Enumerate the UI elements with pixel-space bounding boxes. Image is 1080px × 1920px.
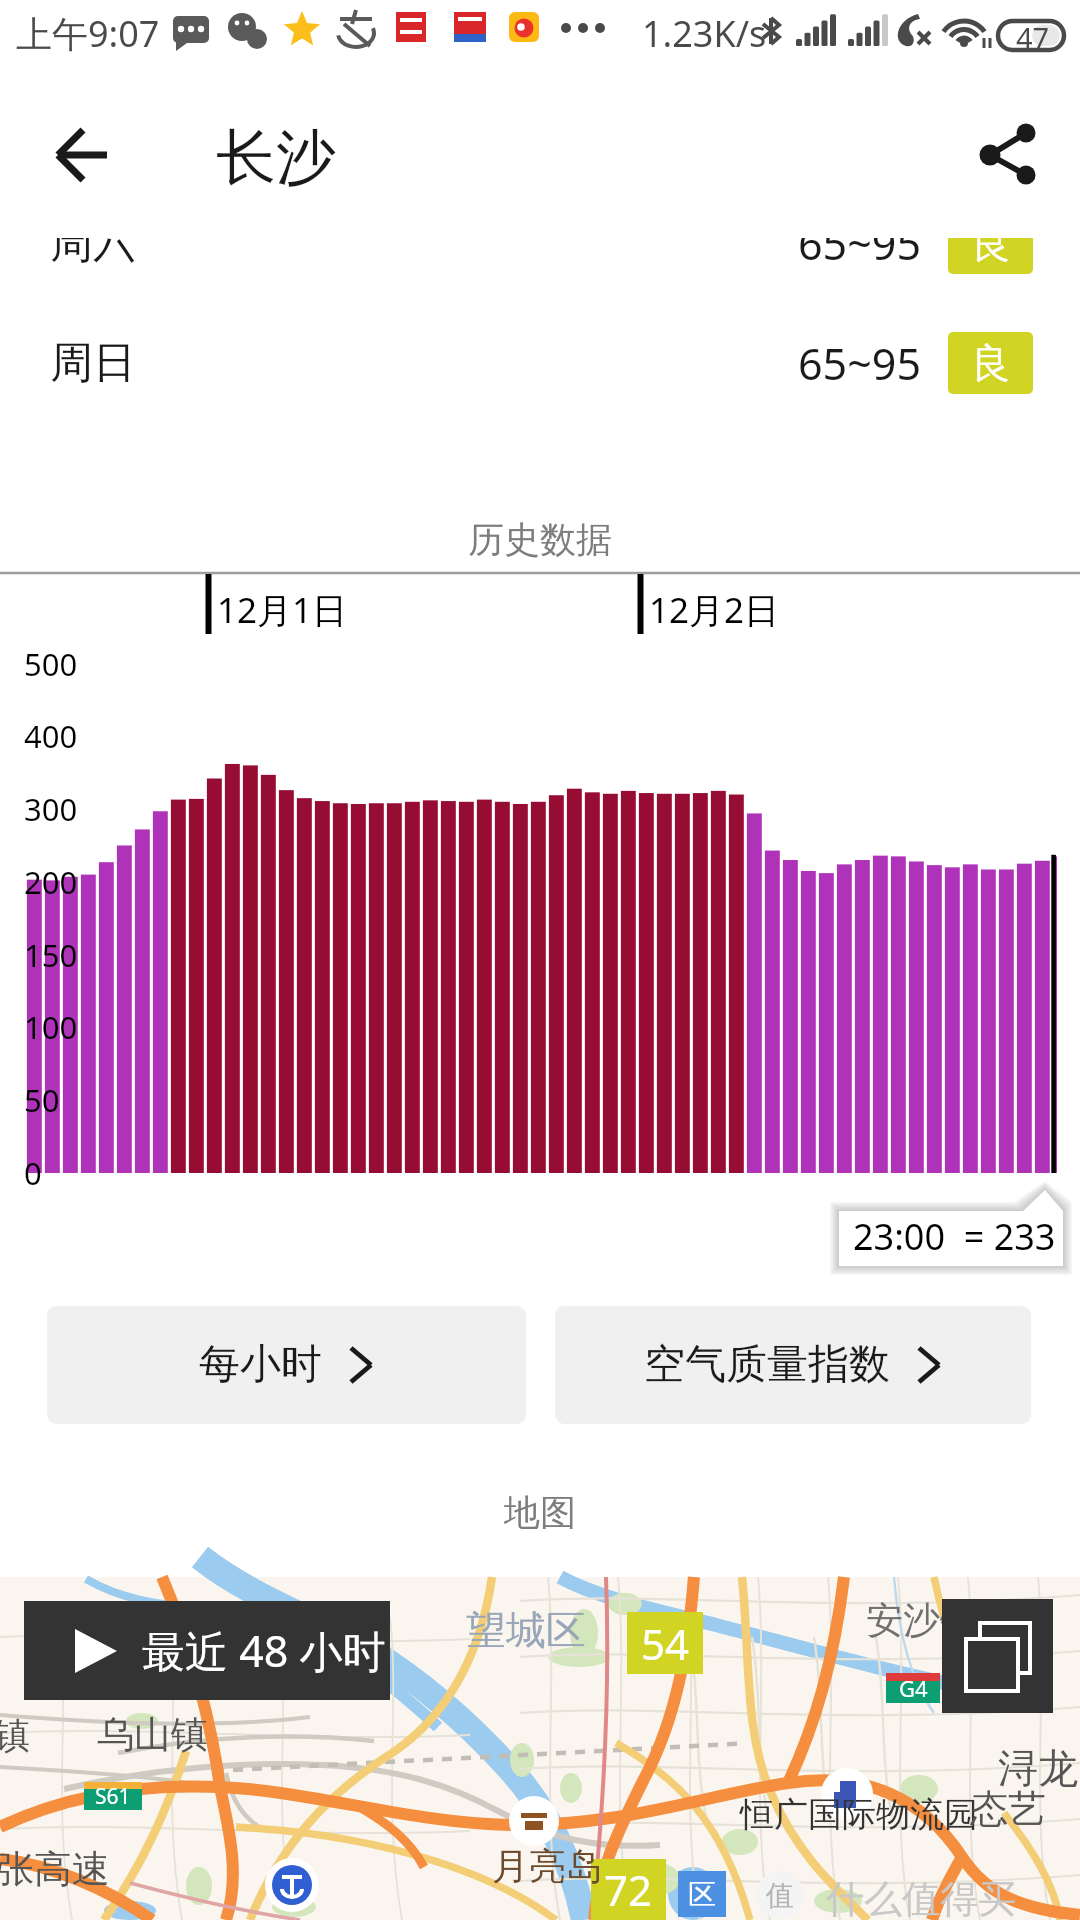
staticText: 65~95 (798, 334, 921, 393)
staticText: S61 (95, 1782, 131, 1810)
staticText: G4 (899, 1673, 928, 1703)
staticText: 长沙 (216, 120, 336, 196)
staticText: 54 (641, 1615, 690, 1672)
staticText: 23:00 = 233 (853, 1212, 1056, 1261)
staticText: 安沙镇 (866, 1597, 977, 1644)
staticText: 空气质量指数 (644, 1339, 890, 1391)
button[interactable]: 周六 (0, 193, 1080, 293)
staticText: 12月1日 (217, 586, 348, 634)
staticText: 什么值得买 (826, 1875, 1016, 1920)
button[interactable]: Back (30, 100, 140, 210)
staticText: 400 (24, 715, 78, 757)
staticText: 良 (971, 338, 1011, 388)
staticText: 区 (688, 1877, 716, 1912)
staticText: 最近 48 小时 (142, 1621, 386, 1680)
staticText: 镇 (0, 1713, 30, 1758)
button[interactable]: 周日 (0, 313, 1080, 413)
staticText: 200 (24, 861, 78, 903)
staticText: 望城区 (466, 1605, 586, 1655)
button[interactable]: Map layers (942, 1599, 1053, 1713)
staticText: 值 (766, 1878, 794, 1913)
staticText: 500 (24, 643, 78, 685)
staticText: 100 (24, 1006, 78, 1048)
staticText: 300 (24, 788, 78, 830)
button[interactable]: 空气质量指数 (555, 1306, 1031, 1424)
staticText: 每小时 (199, 1339, 322, 1391)
staticText: 0 (24, 1152, 42, 1194)
staticText: 浔龙 (998, 1743, 1078, 1793)
staticText: 150 (24, 934, 78, 976)
staticText: 72 (604, 1861, 653, 1918)
staticText: 张高速 (0, 1845, 110, 1893)
staticText: 上午9:07 (16, 9, 160, 58)
staticText: 历史数据 (468, 517, 612, 562)
staticText: 乌山镇 (97, 1711, 208, 1758)
staticText: 50 (24, 1079, 60, 1121)
button[interactable]: 每小时 (47, 1306, 526, 1424)
staticText: 态艺 (970, 1785, 1046, 1833)
button[interactable]: Share (935, 100, 1045, 210)
staticText: 47 (1016, 18, 1050, 57)
staticText: 周日 (50, 336, 136, 390)
staticText: 1.23K/s (642, 9, 767, 58)
staticText: 良 (971, 218, 1011, 268)
staticText: 周六 (50, 216, 136, 270)
staticText: 地图 (504, 1490, 576, 1535)
staticText: 月亮岛 (492, 1843, 603, 1890)
staticText: 65~95 (798, 214, 921, 273)
staticText: 12月2日 (649, 586, 780, 634)
staticText: 恒广国际物流园 (740, 1793, 978, 1836)
button[interactable]: 最近 48 小时 (24, 1601, 390, 1700)
